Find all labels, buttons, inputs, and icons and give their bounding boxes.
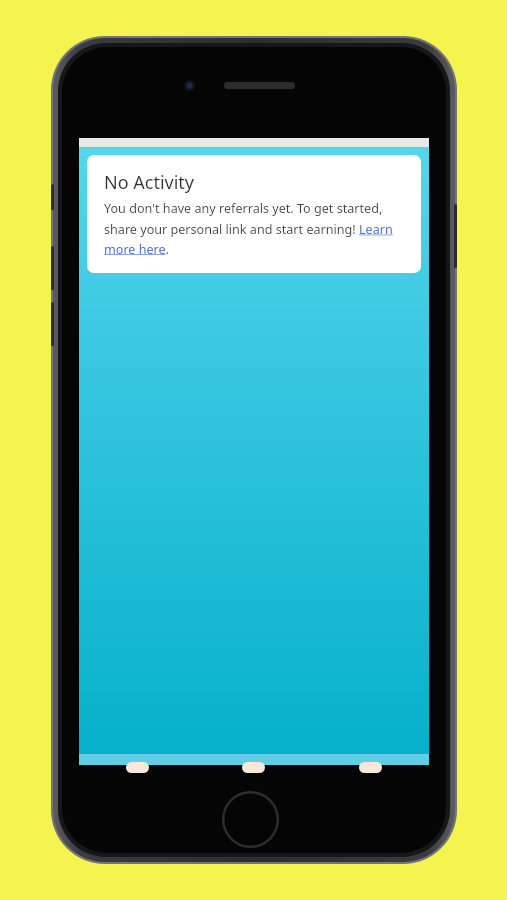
staticText: No Activity (104, 170, 194, 195)
staticText: You don't have any referrals yet. To get… (104, 200, 408, 257)
other: Volume up (51, 246, 54, 290)
button[interactable]: No Activity (87, 155, 421, 273)
other: Power (454, 204, 457, 268)
other: Mute switch (51, 184, 54, 210)
other: Volume down (51, 302, 54, 346)
button[interactable]: Referrals (195, 754, 312, 765)
button[interactable]: Home (79, 754, 195, 765)
button[interactable]: Account (312, 754, 429, 765)
